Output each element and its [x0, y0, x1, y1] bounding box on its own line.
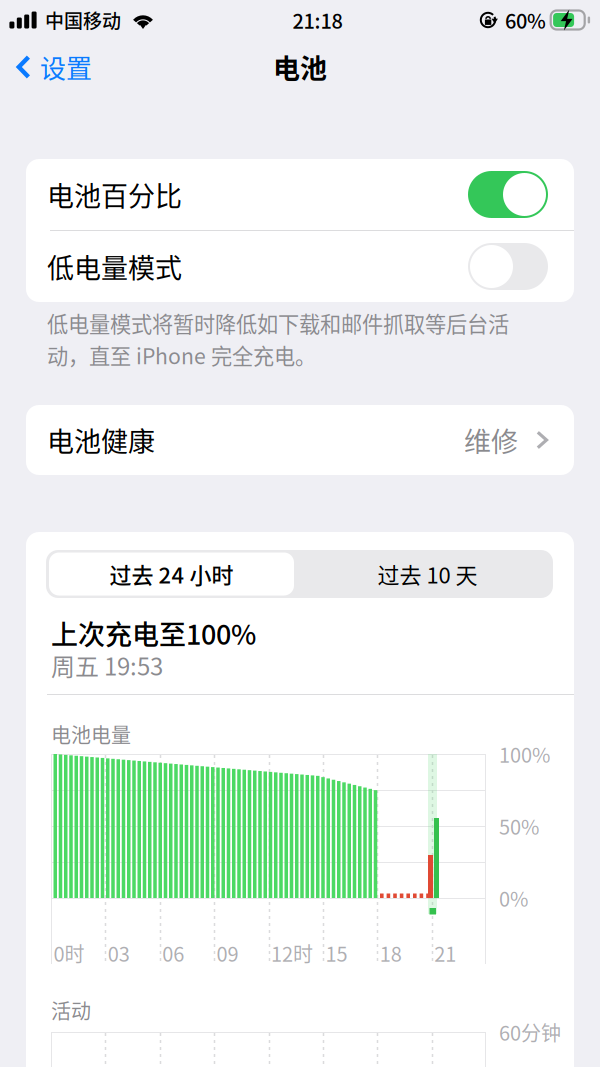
staticText: 06	[162, 938, 184, 967]
staticText: 60%	[505, 5, 546, 34]
staticText: 周五 19:53	[51, 648, 163, 682]
staticText: 50%	[499, 811, 539, 840]
button[interactable]: 设置	[0, 41, 104, 93]
staticText: 动，直至 iPhone 完全充电。	[47, 340, 316, 370]
staticText: 低电量模式将暂时降低如下载和邮件抓取等后台活	[47, 308, 509, 338]
staticText: 中国移动	[45, 6, 121, 34]
button[interactable]: 电池健康	[26, 405, 574, 475]
staticText: 电池电量	[51, 719, 131, 748]
staticText: 电池百分比	[47, 175, 182, 214]
staticText: 0时	[53, 938, 84, 967]
button[interactable]: 过去 10 天	[305, 552, 550, 595]
staticText: 电池健康	[47, 420, 155, 460]
button[interactable]: 低电量模式	[26, 231, 574, 302]
staticText: 上次充电至100%	[51, 613, 256, 653]
staticText: 03	[108, 938, 130, 967]
staticText: 设置	[40, 48, 92, 86]
staticText: 0%	[499, 883, 528, 912]
staticText: 21	[434, 938, 456, 967]
staticText: 过去 10 天	[377, 558, 477, 590]
staticText: 维修	[464, 420, 518, 460]
staticText: 12时	[271, 938, 313, 967]
staticText: 100%	[499, 739, 550, 768]
staticText: 过去 24 小时	[109, 558, 233, 590]
staticText: 18	[380, 938, 402, 967]
staticText: 21:18	[292, 5, 342, 34]
staticText: 电池	[273, 47, 327, 87]
button[interactable]: 过去 24 小时	[49, 552, 294, 595]
staticText: 低电量模式	[47, 247, 182, 286]
staticText: 15	[325, 938, 347, 967]
button[interactable]: 电池百分比	[26, 159, 574, 230]
staticText: 60分钟	[499, 1017, 561, 1046]
staticText: 09	[217, 938, 239, 967]
staticText: 活动	[51, 995, 91, 1024]
